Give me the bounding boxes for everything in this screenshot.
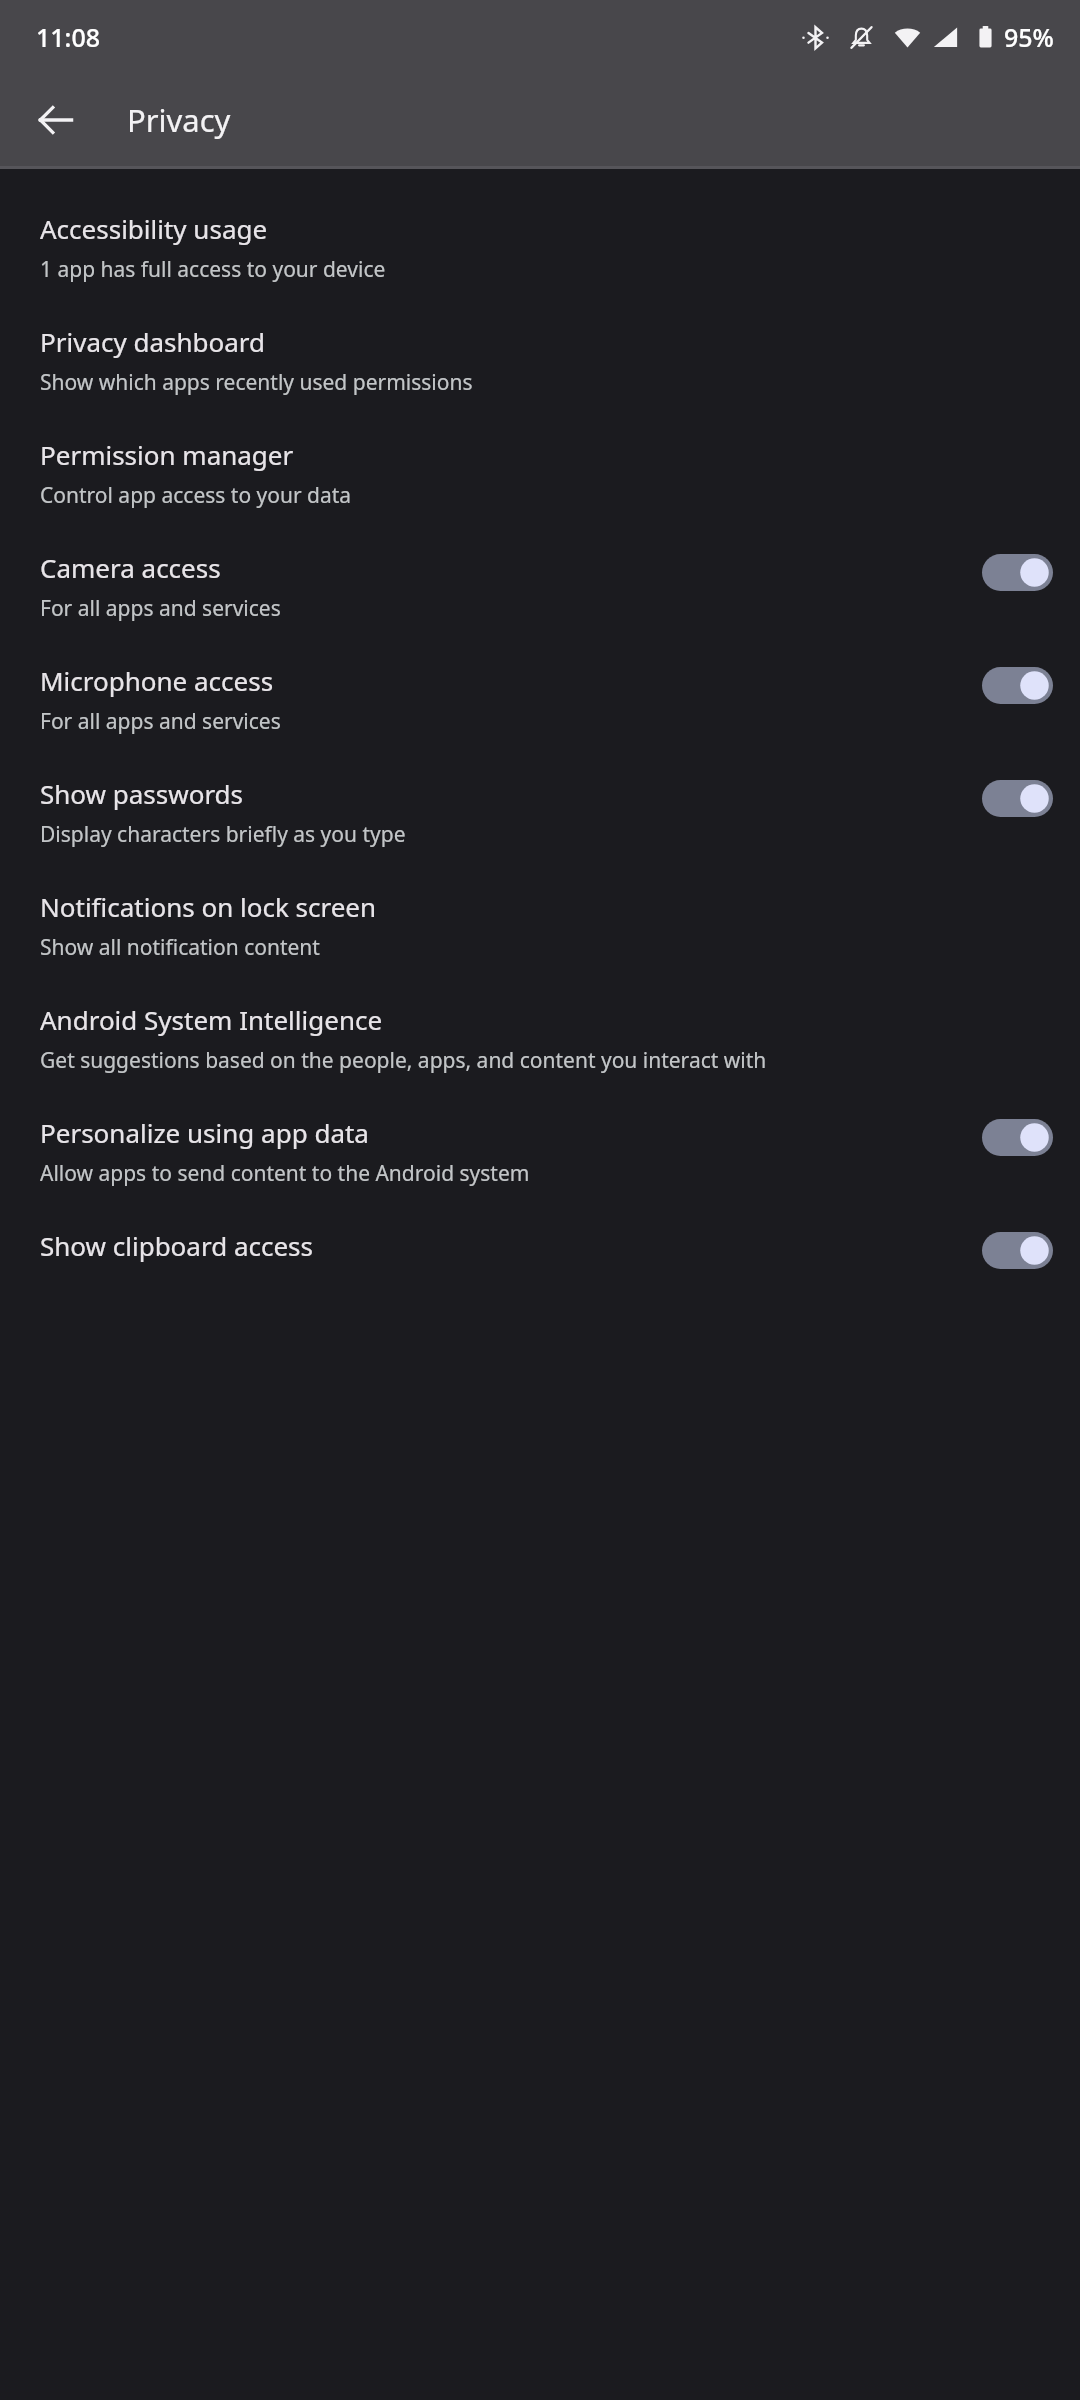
button[interactable]: Show clipboard access — [0, 1208, 1080, 1265]
staticText: Show all notification content — [40, 933, 320, 962]
staticText: Show which apps recently used permission… — [40, 368, 473, 397]
staticText: Camera access — [40, 550, 221, 585]
staticText: Privacy dashboard — [40, 324, 266, 359]
button[interactable]: Accessibility usage — [0, 191, 1080, 304]
button[interactable]: Camera access — [0, 530, 1080, 643]
staticText: For all apps and services — [40, 594, 281, 623]
staticText: Microphone access — [40, 663, 274, 698]
button[interactable]: Personalize using app data — [0, 1095, 1080, 1208]
button[interactable]: Privacy dashboard — [0, 304, 1080, 417]
staticText: Notifications on lock screen — [40, 889, 377, 924]
staticText: For all apps and services — [40, 707, 281, 736]
staticText: Allow apps to send content to the Androi… — [40, 1159, 530, 1188]
staticText: 11:08 — [36, 20, 101, 54]
staticText: Display characters briefly as you type — [40, 820, 406, 849]
staticText: 1 app has full access to your device — [40, 255, 386, 284]
staticText: Control app access to your data — [40, 481, 352, 510]
button[interactable]: Show passwords — [982, 780, 1053, 817]
button[interactable]: Personalize using app data — [982, 1119, 1053, 1156]
button[interactable]: Microphone access — [982, 667, 1053, 704]
button[interactable]: Show clipboard access — [982, 1232, 1053, 1269]
staticText: 95% — [1004, 20, 1054, 54]
staticText: Android System Intelligence — [40, 1002, 383, 1037]
button[interactable]: Camera access — [982, 554, 1053, 591]
button[interactable]: Back — [19, 83, 93, 157]
staticText: Privacy — [127, 99, 231, 141]
button[interactable]: Permission manager — [0, 417, 1080, 530]
staticText: Personalize using app data — [40, 1115, 369, 1150]
staticText: Permission manager — [40, 437, 294, 472]
button[interactable]: Notifications on lock screen — [0, 869, 1080, 982]
staticText: Accessibility usage — [40, 211, 268, 246]
staticText: Show passwords — [40, 776, 244, 811]
staticText: Get suggestions based on the people, app… — [40, 1046, 767, 1075]
staticText: Show clipboard access — [40, 1228, 982, 1263]
button[interactable]: Microphone access — [0, 643, 1080, 756]
button[interactable]: Android System Intelligence — [0, 982, 1080, 1095]
button[interactable]: Show passwords — [0, 756, 1080, 869]
